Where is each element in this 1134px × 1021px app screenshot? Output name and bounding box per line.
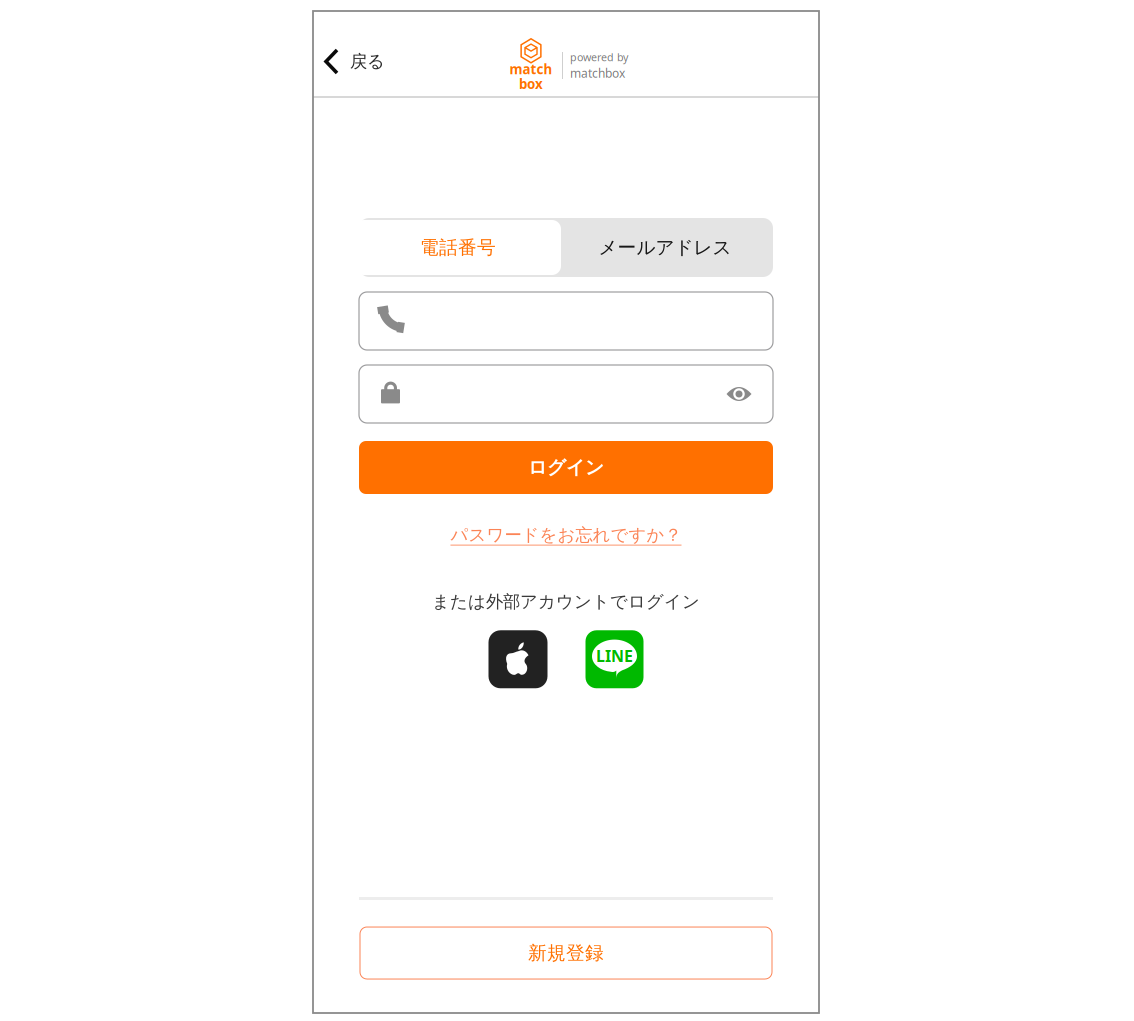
button[interactable]: Sign in with Apple — [488, 630, 547, 688]
staticText: または外部アカウントでログイン — [432, 591, 700, 612]
staticText: matchbox — [570, 65, 625, 81]
staticText: ログイン — [528, 456, 604, 479]
staticText: 電話番号 — [420, 236, 496, 259]
button[interactable]: 電話番号 — [355, 220, 561, 275]
staticText: パスワードをお忘れですか？ — [450, 524, 681, 546]
staticText: match — [509, 60, 552, 78]
staticText: powered by — [570, 50, 628, 64]
staticText: box — [519, 75, 543, 93]
button[interactable]: Show password — [726, 385, 752, 402]
button[interactable]: 戻る — [313, 24, 395, 83]
staticText: 戻る — [350, 51, 385, 72]
button[interactable]: メールアドレス — [561, 220, 769, 275]
staticText: LINE — [596, 645, 633, 666]
button[interactable]: ログイン — [359, 441, 773, 494]
button[interactable]: Sign in with LINE — [585, 630, 643, 688]
button[interactable]: 新規登録 — [360, 927, 772, 979]
staticText: 新規登録 — [528, 941, 604, 964]
staticText: メールアドレス — [598, 236, 731, 259]
button[interactable]: パスワードをお忘れですか？ — [450, 520, 681, 550]
